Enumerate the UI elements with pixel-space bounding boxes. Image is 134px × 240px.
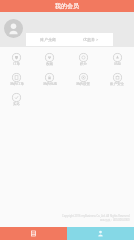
button[interactable]: My account [67,227,134,240]
button[interactable]: 消息 [100,51,134,71]
button[interactable]: 订单 [0,51,33,71]
staticText: 消息 [114,62,121,66]
button[interactable]: Avatar [4,19,23,38]
staticText: Copyright 2016 myBusiness Co.,Ltd. All R… [62,214,130,218]
button[interactable]: 账户余额 [26,33,69,46]
button[interactable]: 账户安全 [100,71,134,91]
staticText: 账户余额 [40,37,56,42]
staticText: 服务热线：400-000-0000 [100,218,130,222]
button[interactable]: 我的设置 [66,71,100,91]
staticText: 账户安全 [110,82,124,86]
staticText: 我的会员 [55,2,79,10]
button[interactable]: 我的订单 [0,71,33,91]
staticText: 优惠券 > [83,37,99,42]
staticText: 我的设置 [76,82,90,86]
staticText: 会员昵称 [28,36,46,42]
staticText: 我的优惠 [43,82,57,86]
button[interactable]: 积分 [66,51,100,71]
staticText: 订单 [13,62,20,66]
button[interactable]: Home [0,227,67,240]
button[interactable]: 实名 [0,91,33,111]
button[interactable]: 优惠券 > [69,33,113,46]
staticText: 积分 [80,62,87,66]
staticText: 收藏 [46,62,53,66]
staticText: 我的订单 [10,82,24,86]
button[interactable]: 收藏 [33,51,66,71]
staticText: 实名 [13,102,20,106]
button[interactable]: 我的优惠 [33,71,66,91]
